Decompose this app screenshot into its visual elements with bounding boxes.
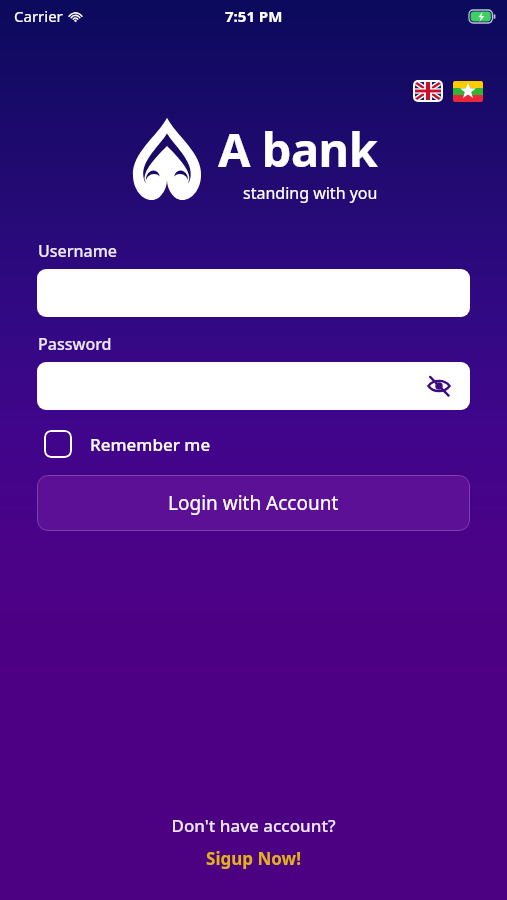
staticText: Carrier [14, 6, 63, 26]
staticText: standing with you [243, 182, 378, 204]
staticText: Remember me [90, 433, 211, 456]
button[interactable]: Myanmar language [453, 81, 483, 102]
button[interactable]: Remember me [44, 430, 211, 458]
staticText: Username [38, 240, 118, 262]
staticText: A bank [218, 117, 378, 181]
staticText: Password [38, 333, 112, 355]
button[interactable] [37, 269, 470, 317]
staticText: 7:51 PM [225, 6, 283, 26]
staticText: Login with Account [168, 490, 339, 516]
button[interactable]: Sigup Now! [206, 847, 301, 870]
button[interactable]: Don't have account? [171, 814, 336, 837]
button[interactable]: Toggle password visibility [424, 371, 454, 401]
button[interactable]: Login with Account [37, 475, 470, 531]
button[interactable]: Toggle password visibility [37, 362, 470, 410]
button[interactable]: English language [413, 80, 443, 102]
